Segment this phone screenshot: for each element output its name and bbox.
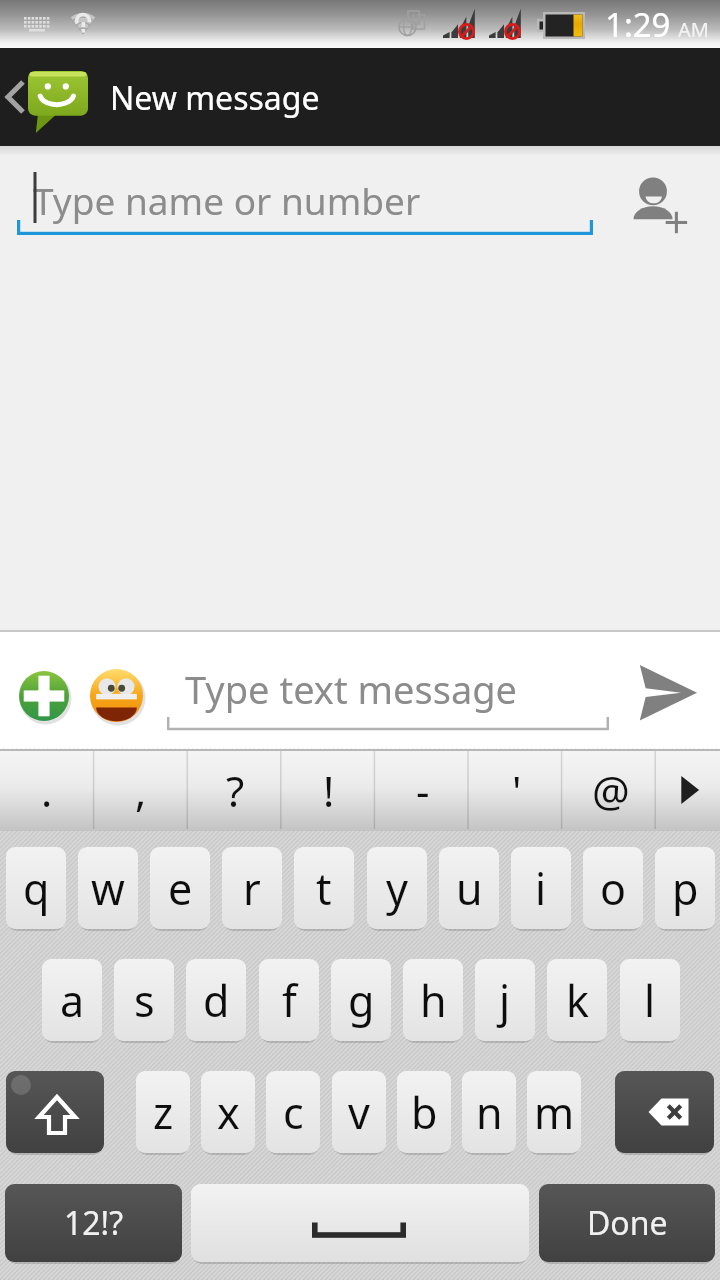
staticText: @ — [592, 762, 630, 819]
staticText: c — [283, 1083, 304, 1142]
button[interactable]: y — [367, 847, 427, 929]
button[interactable]: Type text message — [167, 652, 609, 730]
button[interactable]: z — [136, 1071, 190, 1153]
staticText: o — [600, 859, 627, 918]
button[interactable]: Add contact — [616, 152, 696, 242]
staticText: t — [316, 859, 332, 918]
button[interactable]: h — [403, 959, 463, 1041]
button[interactable]: Insert emoji — [89, 668, 144, 723]
button[interactable]: w — [78, 847, 138, 929]
staticText: f — [282, 971, 297, 1030]
staticText: , — [135, 762, 147, 819]
staticText: - — [416, 762, 430, 819]
button[interactable]: New message — [0, 48, 720, 146]
button[interactable]: s — [114, 959, 174, 1041]
button[interactable]: Done — [539, 1184, 715, 1262]
staticText: r — [243, 859, 261, 918]
staticText: m — [534, 1083, 575, 1142]
staticText: y — [386, 859, 408, 918]
staticText: j — [499, 971, 511, 1030]
button[interactable]: b — [397, 1071, 451, 1153]
button[interactable]: ' — [470, 749, 564, 831]
button[interactable]: @ — [564, 749, 658, 831]
staticText: z — [153, 1083, 174, 1142]
staticText: b — [411, 1083, 438, 1142]
staticText: New message — [110, 76, 320, 120]
button[interactable]: m — [527, 1071, 581, 1153]
staticText: s — [134, 971, 155, 1030]
staticText: l — [644, 971, 656, 1030]
button[interactable]: i — [511, 847, 571, 929]
staticText: x — [217, 1083, 240, 1142]
button[interactable]: e — [150, 847, 210, 929]
button[interactable]: n — [462, 1071, 516, 1153]
staticText: ' — [512, 762, 522, 819]
button[interactable]: 12!? — [5, 1184, 182, 1262]
button[interactable]: k — [547, 959, 607, 1041]
staticText: ! — [323, 762, 335, 819]
button[interactable]: - — [376, 749, 470, 831]
staticText: AM — [678, 16, 709, 43]
staticText: q — [23, 859, 50, 918]
staticText: k — [566, 971, 589, 1030]
staticText: v — [348, 1083, 370, 1142]
button[interactable]: a — [42, 959, 102, 1041]
button[interactable]: t — [294, 847, 354, 929]
button[interactable]: Space — [191, 1184, 529, 1262]
button[interactable]: d — [186, 959, 246, 1041]
staticText: h — [420, 971, 447, 1030]
staticText: d — [203, 971, 230, 1030]
staticText: e — [168, 859, 193, 918]
button[interactable]: v — [332, 1071, 386, 1153]
staticText: . — [41, 762, 53, 819]
button[interactable]: Attach — [18, 670, 70, 722]
button[interactable]: u — [439, 847, 499, 929]
staticText: Done — [587, 1201, 668, 1245]
button[interactable]: l — [620, 959, 680, 1041]
staticText: u — [456, 859, 483, 918]
button[interactable]: p — [655, 847, 715, 929]
button[interactable]: q — [6, 847, 66, 929]
button[interactable]: ? — [188, 749, 282, 831]
button[interactable]: f — [259, 959, 319, 1041]
button[interactable]: Type name or number — [17, 166, 593, 235]
staticText: n — [476, 1083, 503, 1142]
staticText: w — [91, 859, 125, 918]
button[interactable]: More symbols — [658, 749, 720, 831]
button[interactable]: Shift — [6, 1071, 104, 1153]
button[interactable]: c — [266, 1071, 320, 1153]
button[interactable]: Delete — [615, 1071, 714, 1153]
staticText: ? — [226, 762, 245, 819]
staticText: g — [348, 971, 375, 1030]
button[interactable]: x — [201, 1071, 255, 1153]
staticText: 12!? — [64, 1201, 124, 1245]
button[interactable]: Send — [620, 656, 710, 726]
staticText: i — [535, 859, 547, 918]
button[interactable]: . — [0, 749, 94, 831]
button[interactable]: o — [583, 847, 643, 929]
staticText: p — [672, 859, 699, 918]
staticText: a — [60, 971, 85, 1030]
button[interactable]: j — [475, 959, 535, 1041]
button[interactable]: ! — [282, 749, 376, 831]
button[interactable]: g — [331, 959, 391, 1041]
button[interactable]: , — [94, 749, 188, 831]
button[interactable]: r — [222, 847, 282, 929]
staticText: 1:29 — [605, 2, 671, 47]
staticText: Type name or number — [33, 175, 421, 225]
staticText: Type text message — [185, 663, 518, 715]
